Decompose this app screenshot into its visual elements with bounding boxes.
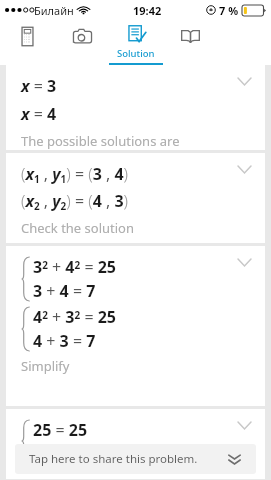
button[interactable]: Calculator bbox=[0, 20, 55, 65]
staticText: 7 % bbox=[219, 3, 239, 18]
staticText: 7 = 7 bbox=[33, 444, 69, 466]
button[interactable]: Solution bbox=[109, 20, 163, 65]
staticText: 42 + 32 = 25 bbox=[33, 306, 116, 328]
staticText: 3 + 4 = 7 bbox=[33, 280, 96, 302]
staticText: Tap here to share this problem. bbox=[29, 451, 198, 467]
staticText: 32 + 42 = 25 bbox=[33, 256, 116, 278]
button[interactable]: Book bbox=[163, 20, 217, 65]
button[interactable]: 32 + 42 = 25 bbox=[6, 246, 265, 406]
button[interactable]: 25 = 25 bbox=[6, 409, 265, 479]
button[interactable]: (x1 , y1) = (3 , 4) bbox=[6, 153, 265, 243]
staticText: (x2 , y2) = (4 , 3) bbox=[21, 190, 129, 213]
staticText: x = 4 bbox=[21, 103, 57, 125]
button[interactable]: Camera bbox=[55, 20, 109, 65]
staticText: 25 = 25 bbox=[33, 419, 88, 441]
staticText: x = 3 bbox=[21, 75, 57, 97]
staticText: Simplify bbox=[21, 357, 70, 375]
button[interactable]: Tap here to share this problem. bbox=[15, 444, 256, 474]
staticText: Билайн bbox=[34, 3, 74, 18]
staticText: The possible solutions are bbox=[21, 132, 180, 150]
staticText: 19:42 bbox=[133, 3, 162, 18]
staticText: 4 + 3 = 7 bbox=[33, 330, 96, 352]
button[interactable]: x = 3 bbox=[6, 65, 265, 150]
staticText: Solution bbox=[117, 47, 155, 60]
staticText: Check the solution bbox=[21, 219, 135, 237]
staticText: (x1 , y1) = (3 , 4) bbox=[21, 163, 129, 186]
